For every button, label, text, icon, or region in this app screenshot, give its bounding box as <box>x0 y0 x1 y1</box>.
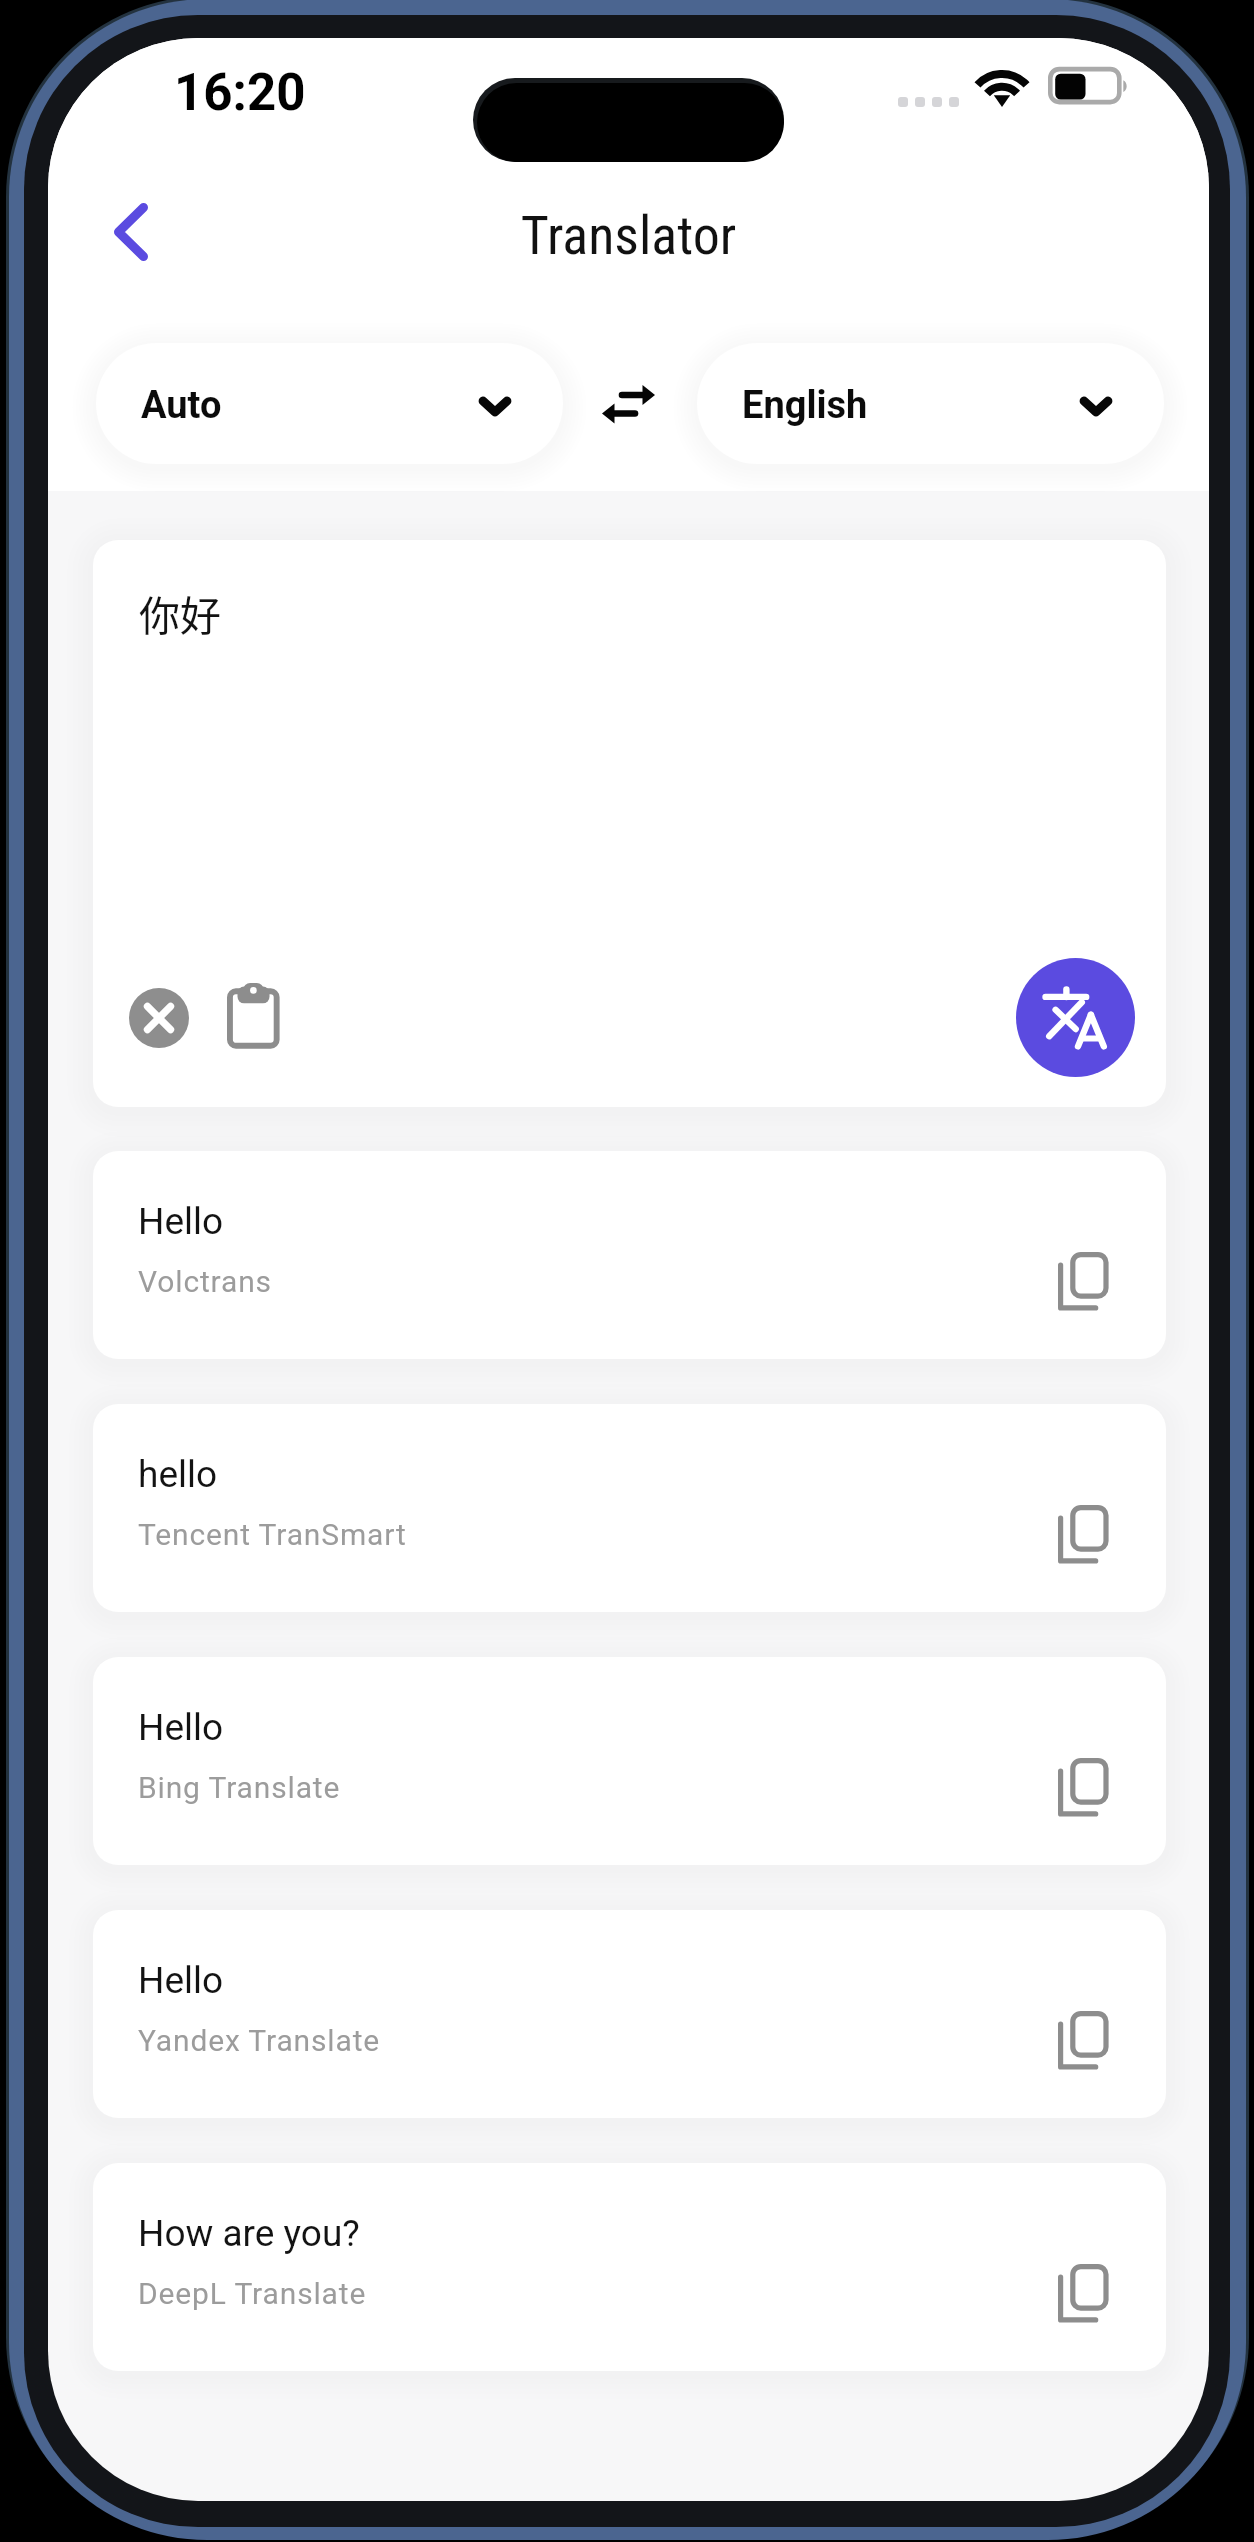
button[interactable]: English <box>697 343 1164 464</box>
button[interactable]: Copy <box>1047 1494 1119 1574</box>
staticText: DeepL Translate <box>138 2276 367 2311</box>
staticText: Volctrans <box>138 1264 272 1299</box>
staticText: Tencent TranSmart <box>138 1517 407 1552</box>
staticText: hello <box>138 1453 218 1496</box>
staticText: 你好 <box>139 583 221 642</box>
staticText: Hello <box>138 1706 224 1749</box>
button[interactable]: Auto <box>96 343 563 464</box>
button[interactable]: Copy <box>1047 1241 1119 1321</box>
staticText: 16:20 <box>174 63 306 123</box>
button[interactable]: How are you? <box>93 2163 1166 2371</box>
staticText: Hello <box>138 1959 224 2002</box>
staticText: English <box>742 383 868 428</box>
button[interactable]: hello <box>93 1404 1166 1612</box>
button[interactable]: Hello <box>93 1151 1166 1359</box>
staticText: Translator <box>48 204 1209 267</box>
button[interactable]: Copy <box>1047 2000 1119 2080</box>
staticText: Auto <box>141 383 222 428</box>
button[interactable]: Copy <box>1047 1747 1119 1827</box>
button[interactable]: Swap languages <box>582 354 675 447</box>
staticText: How are you? <box>138 2212 360 2255</box>
staticText: Hello <box>138 1200 224 1243</box>
staticText: Bing Translate <box>138 1770 341 1805</box>
staticText: Yandex Translate <box>138 2023 381 2058</box>
button[interactable]: Copy <box>1047 2253 1119 2333</box>
button[interactable]: Translate <box>1016 958 1135 1077</box>
button[interactable]: Hello <box>93 1657 1166 1865</box>
button[interactable]: Clear <box>129 988 189 1048</box>
button[interactable]: Hello <box>93 1910 1166 2118</box>
button[interactable]: Paste <box>226 982 281 1050</box>
button[interactable]: Back <box>92 183 170 281</box>
button[interactable]: 你好 <box>93 540 1166 1107</box>
